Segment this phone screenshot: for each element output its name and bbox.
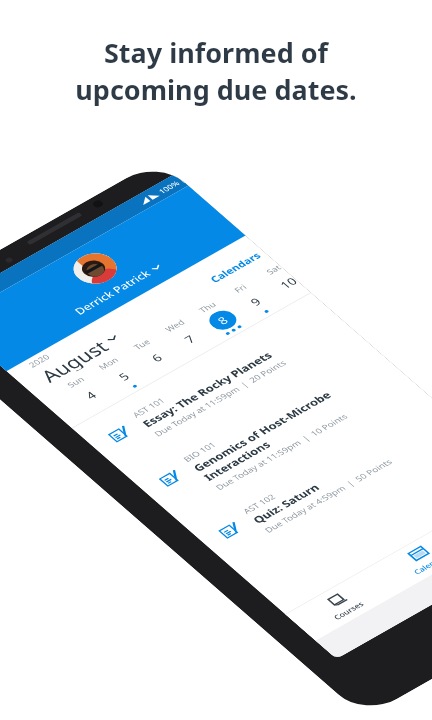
button[interactable]: Thu — [183, 291, 254, 343]
button[interactable]: Calendars — [207, 249, 264, 285]
staticText: Quiz: Saturn — [249, 481, 323, 526]
staticText: Due Today at 4:59pm | 50 Points — [262, 456, 395, 535]
staticText: Tue — [131, 337, 153, 352]
staticText: 9 — [246, 294, 265, 309]
staticText: Sat — [263, 262, 284, 277]
button[interactable]: Mon — [84, 347, 155, 399]
staticText: Genomics of Host-Microbe Interactions — [190, 388, 345, 483]
staticText: August — [34, 335, 113, 385]
button[interactable]: 2020 — [26, 321, 125, 385]
staticText: 7 — [180, 332, 199, 346]
button[interactable]: Sat — [249, 259, 311, 306]
staticText: Derrick Patrick — [71, 267, 154, 317]
button[interactable]: AST 102 — [187, 393, 432, 573]
staticText: 6 — [148, 350, 166, 365]
staticText: Due Today at 11:59pm | 10 Points — [213, 411, 351, 492]
staticText: 8 — [213, 313, 232, 327]
staticText: Calendar — [411, 552, 432, 576]
staticText: BIO 101 — [180, 439, 219, 464]
staticText: Courses — [331, 599, 366, 621]
staticText: Wed — [162, 317, 187, 334]
staticText: AST 101 — [129, 395, 168, 420]
button[interactable]: Wed — [150, 309, 221, 362]
button[interactable]: Fri — [216, 272, 287, 324]
button[interactable]: BIO 101 — [128, 341, 427, 529]
staticText: 10 — [276, 274, 301, 292]
staticText: Fri — [231, 282, 249, 295]
button[interactable]: Courses — [286, 568, 397, 641]
button[interactable]: Calendar — [367, 522, 432, 594]
button[interactable]: AST 101 — [77, 297, 367, 477]
button[interactable]: Derrick Patrick — [40, 233, 165, 317]
staticText: 2020 — [26, 352, 52, 370]
staticText: 4 — [82, 388, 100, 402]
staticText: Mon — [95, 354, 121, 372]
staticText: Thu — [196, 299, 219, 315]
staticText: Sun — [64, 374, 87, 390]
staticText: Essay: The Rocky Planets — [139, 348, 276, 430]
button[interactable]: Tue — [117, 328, 188, 380]
staticText: 100% — [156, 178, 182, 195]
staticText: Due Today at 11:59pm | 20 Points — [151, 357, 289, 438]
staticText: 5 — [115, 369, 133, 383]
staticText: AST 102 — [240, 491, 278, 516]
button[interactable]: Sun — [51, 365, 122, 418]
staticText: Stay informed of upcoming due dates. — [0, 34, 432, 108]
